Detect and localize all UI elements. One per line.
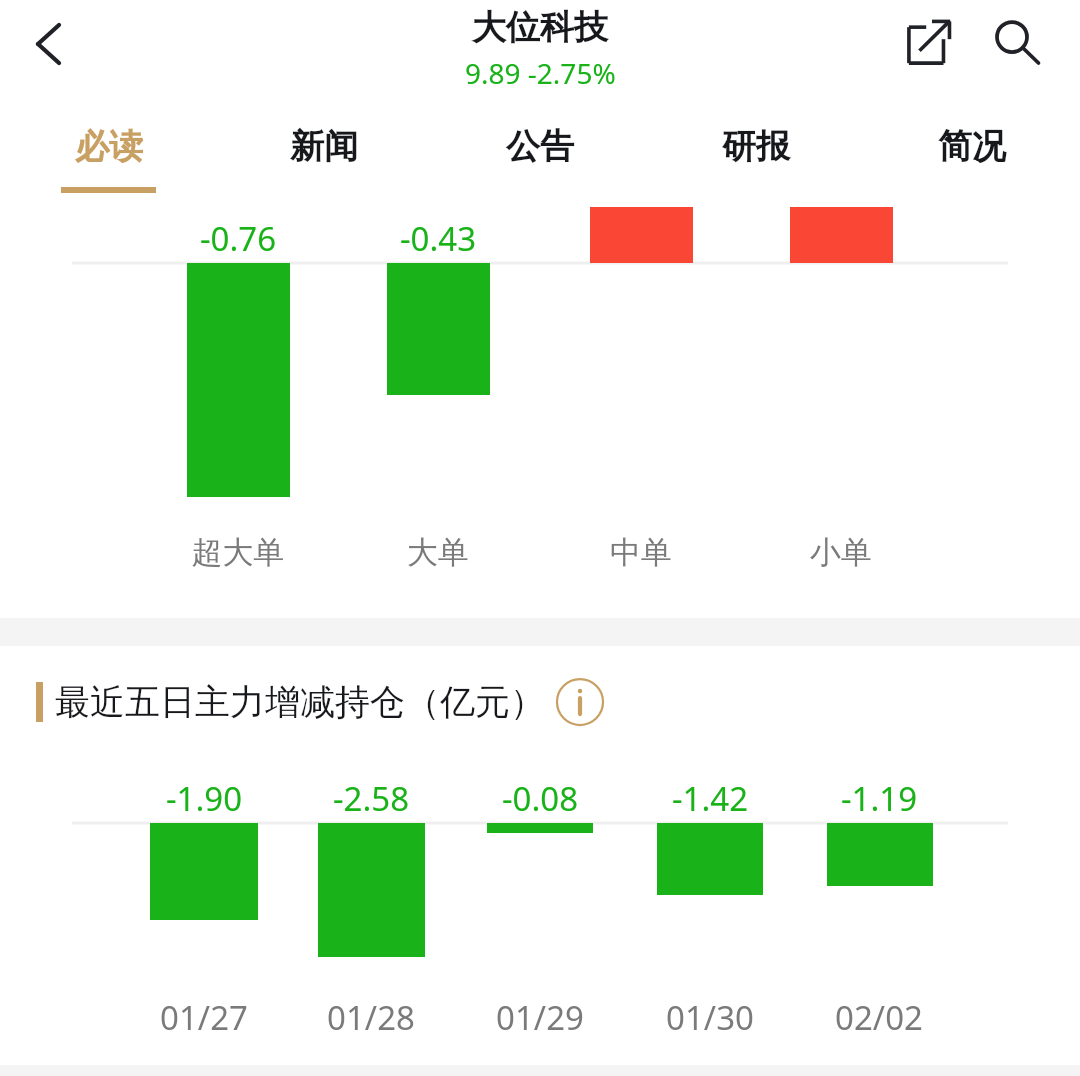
- button[interactable]: Share: [896, 8, 966, 78]
- staticText: -2.58: [261, 776, 481, 821]
- button[interactable]: Search: [982, 8, 1052, 78]
- staticText: -0.76: [128, 216, 348, 261]
- staticText: 大位科技: [472, 6, 608, 49]
- staticText: -1.42: [600, 776, 820, 821]
- button[interactable]: Back: [8, 2, 92, 86]
- staticText: 01/27: [94, 995, 314, 1040]
- button[interactable]: 必读: [0, 125, 216, 210]
- staticText: -1.19: [769, 776, 989, 821]
- staticText: -0.08: [430, 776, 650, 821]
- button[interactable]: 新闻: [216, 125, 432, 210]
- button[interactable]: 公告: [432, 125, 648, 210]
- button[interactable]: 简况: [864, 125, 1080, 210]
- staticText: 小单: [731, 533, 951, 572]
- staticText: 01/30: [600, 995, 820, 1040]
- staticText: 中单: [531, 533, 751, 572]
- staticText: 新闻: [290, 125, 358, 168]
- button[interactable]: 最近五日主力增减持仓（亿元）: [0, 672, 1080, 732]
- staticText: 最近五日主力增减持仓（亿元）: [55, 680, 545, 724]
- staticText: 公告: [506, 125, 574, 168]
- staticText: 必读: [75, 125, 143, 168]
- staticText: 01/29: [430, 995, 650, 1040]
- staticText: 研报: [722, 125, 790, 168]
- staticText: -1.90: [94, 776, 314, 821]
- staticText: 超大单: [128, 533, 348, 572]
- staticText: -0.43: [328, 216, 548, 261]
- staticText: 大单: [328, 533, 548, 572]
- button[interactable]: 研报: [648, 125, 864, 210]
- staticText: 9.89 -2.75%: [465, 54, 616, 92]
- staticText: 02/02: [769, 995, 989, 1040]
- staticText: 01/28: [261, 995, 481, 1040]
- staticText: 简况: [938, 125, 1006, 168]
